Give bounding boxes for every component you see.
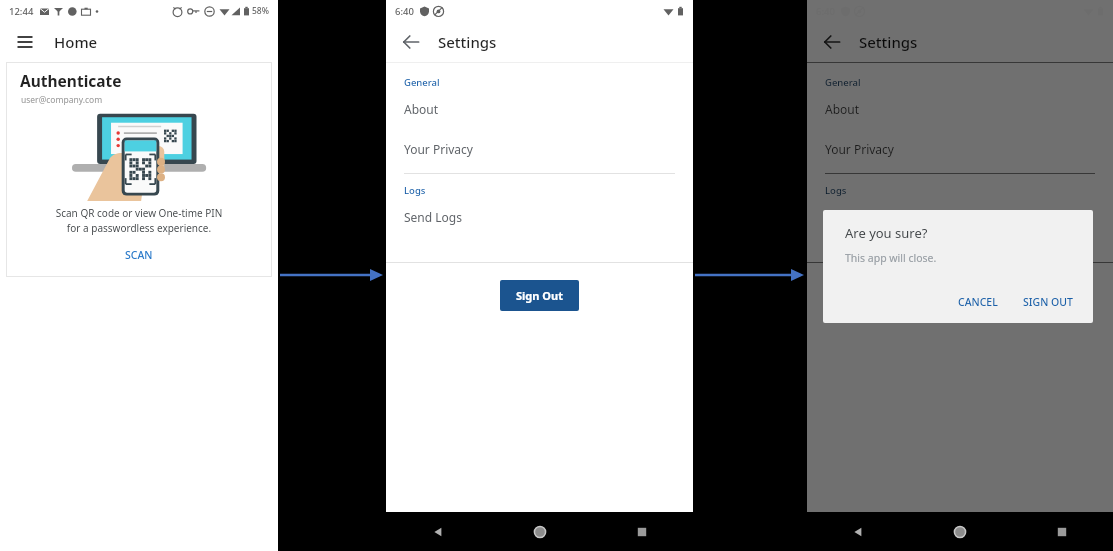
button[interactable]: Recent apps xyxy=(591,512,693,551)
button[interactable]: Your Privacy xyxy=(386,129,693,169)
staticText: Logs xyxy=(404,184,426,197)
button[interactable]: Home xyxy=(489,512,591,551)
staticText: General xyxy=(404,76,440,89)
button[interactable]: Send Logs xyxy=(807,197,1113,237)
staticText: 6:40 xyxy=(395,5,414,18)
staticText: Settings xyxy=(438,32,497,52)
button[interactable]: Send Logs xyxy=(386,197,693,237)
button[interactable]: Navigate up xyxy=(819,29,845,55)
staticText: Logs xyxy=(825,184,847,197)
button[interactable]: SCAN xyxy=(111,244,167,266)
button[interactable]: Back xyxy=(386,512,489,551)
button[interactable]: Recent apps xyxy=(1011,512,1113,551)
staticText: This app will close. xyxy=(845,251,937,265)
button[interactable]: Sign Out xyxy=(500,280,579,311)
button[interactable]: Navigate up xyxy=(398,29,424,55)
staticText: user@company.com xyxy=(21,94,103,106)
staticText: Home xyxy=(54,32,98,52)
staticText: Settings xyxy=(859,32,918,52)
staticText: Your Privacy xyxy=(825,141,894,157)
staticText: About xyxy=(404,101,439,117)
staticText: 12:44 xyxy=(9,5,34,18)
staticText: CANCEL xyxy=(958,295,998,309)
button[interactable]: About xyxy=(386,89,693,129)
staticText: Sign Out xyxy=(516,288,563,303)
staticText: 58% xyxy=(252,5,269,17)
button[interactable]: About xyxy=(807,89,1113,129)
staticText: Scan QR code or view One-time PIN for a … xyxy=(6,206,272,235)
staticText: General xyxy=(825,76,861,89)
button[interactable]: Open navigation menu xyxy=(12,29,38,55)
button[interactable]: SIGN OUT xyxy=(1015,291,1081,313)
staticText: Sign Out xyxy=(937,288,984,303)
button[interactable]: Sign Out xyxy=(921,280,1000,311)
staticText: Send Logs xyxy=(404,209,462,225)
button[interactable]: CANCEL xyxy=(950,291,1006,313)
staticText: SIGN OUT xyxy=(1023,295,1073,309)
staticText: About xyxy=(825,101,860,117)
button[interactable]: Back xyxy=(807,512,909,551)
staticText: Are you sure? xyxy=(845,224,928,242)
staticText: Send Logs xyxy=(825,209,883,225)
staticText: Your Privacy xyxy=(404,141,473,157)
staticText: SCAN xyxy=(125,248,153,262)
staticText: Authenticate xyxy=(20,70,122,91)
button[interactable]: Home xyxy=(909,512,1011,551)
button[interactable]: Your Privacy xyxy=(807,129,1113,169)
